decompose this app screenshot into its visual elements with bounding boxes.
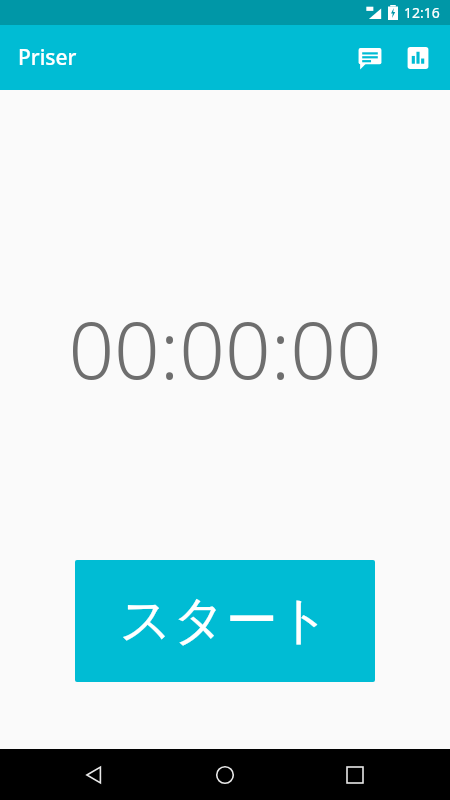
staticText: Priser <box>18 43 77 72</box>
staticText: スタート <box>119 588 331 654</box>
button[interactable]: Messages <box>346 34 394 82</box>
staticText: 12:16 <box>404 3 440 22</box>
button[interactable]: Statistics <box>394 34 442 82</box>
button[interactable]: Recent apps <box>320 749 390 800</box>
staticText: 00:00:00 <box>68 293 382 402</box>
button[interactable]: Home <box>190 749 260 800</box>
button[interactable]: Back <box>60 749 130 800</box>
button[interactable]: スタート <box>75 560 375 682</box>
